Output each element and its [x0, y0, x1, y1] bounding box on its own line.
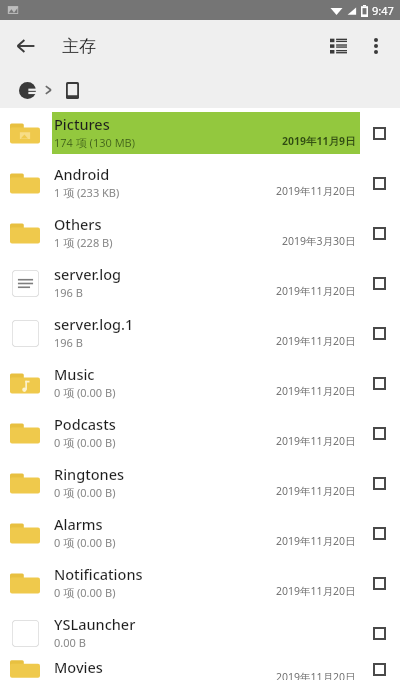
button[interactable]: Alarms	[0, 508, 400, 558]
staticText: Music	[54, 364, 95, 384]
button[interactable]: Notifications	[0, 558, 400, 608]
button[interactable]: Others	[0, 208, 400, 258]
button[interactable]: Select Notifications	[365, 569, 393, 597]
staticText: 2019年11月20日	[276, 384, 356, 398]
button[interactable]: More options	[356, 26, 396, 66]
staticText: Alarms	[54, 514, 103, 534]
button[interactable]: YSLauncher	[0, 608, 400, 658]
button[interactable]: View mode	[318, 26, 358, 66]
button[interactable]: Select Pictures	[365, 119, 393, 147]
button[interactable]: Movies	[0, 658, 400, 680]
button[interactable]: server.log	[0, 258, 400, 308]
button[interactable]: Storage	[14, 77, 40, 103]
staticText: 2019年3月30日	[282, 234, 356, 248]
staticText: Android	[54, 164, 110, 184]
staticText: 主存	[62, 36, 96, 57]
button[interactable]: Android	[0, 158, 400, 208]
staticText: Ringtones	[54, 464, 125, 484]
staticText: 2019年11月20日	[276, 484, 356, 498]
staticText: 2019年11月20日	[276, 284, 356, 298]
staticText: 2019年11月20日	[276, 334, 356, 348]
staticText: Movies	[54, 657, 103, 677]
button[interactable]: Select Movies	[365, 658, 393, 680]
staticText: Podcasts	[54, 414, 116, 434]
staticText: Others	[54, 214, 102, 234]
button[interactable]: Select server.log.1	[365, 319, 393, 347]
staticText: 2019年11月9日	[282, 134, 356, 148]
staticText: 2019年11月20日	[276, 584, 356, 598]
button[interactable]: Podcasts	[0, 408, 400, 458]
staticText: 196 B	[54, 285, 83, 300]
button[interactable]: Device	[59, 77, 85, 103]
staticText: 0 项 (0.00 B)	[54, 435, 116, 450]
button[interactable]: Select YSLauncher	[365, 619, 393, 647]
staticText: 196 B	[54, 335, 83, 350]
staticText: 0.00 B	[54, 635, 86, 650]
button[interactable]: Select Android	[365, 169, 393, 197]
staticText: 0 项 (0.00 B)	[54, 385, 116, 400]
button[interactable]: Select Others	[365, 219, 393, 247]
staticText: 1 项 (228 B)	[54, 235, 113, 250]
staticText: 2019年11月20日	[276, 534, 356, 548]
button[interactable]: Music	[0, 358, 400, 408]
button[interactable]: Ringtones	[0, 458, 400, 508]
staticText: 174 项 (130 MB)	[54, 135, 136, 150]
staticText: server.log	[54, 264, 121, 284]
staticText: server.log.1	[54, 314, 134, 334]
button[interactable]: Select Music	[365, 369, 393, 397]
button[interactable]: Select Alarms	[365, 519, 393, 547]
button[interactable]: Pictures	[0, 108, 400, 158]
button[interactable]: Back	[6, 26, 46, 66]
staticText: 0 项 (0.00 B)	[54, 485, 116, 500]
staticText: 2019年11月20日	[276, 670, 356, 680]
staticText: 0 项 (0.00 B)	[54, 535, 116, 550]
staticText: 9:47	[372, 3, 394, 18]
button[interactable]: Select server.log	[365, 269, 393, 297]
staticText: 0 项 (0.00 B)	[54, 585, 116, 600]
staticText: Notifications	[54, 564, 143, 584]
staticText: Pictures	[54, 114, 110, 134]
staticText: 2019年11月20日	[276, 184, 356, 198]
staticText: 2019年11月20日	[276, 434, 356, 448]
button[interactable]: Select Podcasts	[365, 419, 393, 447]
button[interactable]: Select Ringtones	[365, 469, 393, 497]
staticText: 1 项 (233 KB)	[54, 185, 120, 200]
staticText: YSLauncher	[54, 614, 136, 634]
button[interactable]: server.log.1	[0, 308, 400, 358]
